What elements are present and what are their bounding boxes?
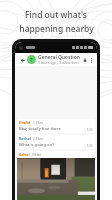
staticText: 1:05 <box>87 128 93 132</box>
staticText: Rachel <box>19 136 31 141</box>
staticText: 0.6 km <box>32 153 42 157</box>
staticText: 1.7 km <box>33 121 44 125</box>
staticText: 1:05 <box>87 144 93 148</box>
staticText: 9 hours ago | 3 subscribers <box>38 61 80 65</box>
staticText: Find out what's <box>25 9 87 21</box>
staticText: What is going on? <box>19 142 87 148</box>
button[interactable]: Khalid <box>17 119 95 133</box>
button[interactable]: Lock <box>81 56 88 63</box>
staticText: Rafael <box>19 152 30 157</box>
staticText: ? <box>30 56 33 63</box>
staticText: happening nearby <box>19 23 94 35</box>
staticText: General Question <box>38 54 80 61</box>
staticText: Khalid <box>19 120 31 125</box>
button[interactable]: Rachel <box>17 135 95 149</box>
button[interactable]: Rafael <box>17 151 95 200</box>
button[interactable]: More options <box>88 57 94 63</box>
button[interactable]: Back <box>18 56 26 64</box>
staticText: Btw, totally fine there <box>19 126 87 132</box>
staticText: 2.1 km <box>33 137 44 141</box>
